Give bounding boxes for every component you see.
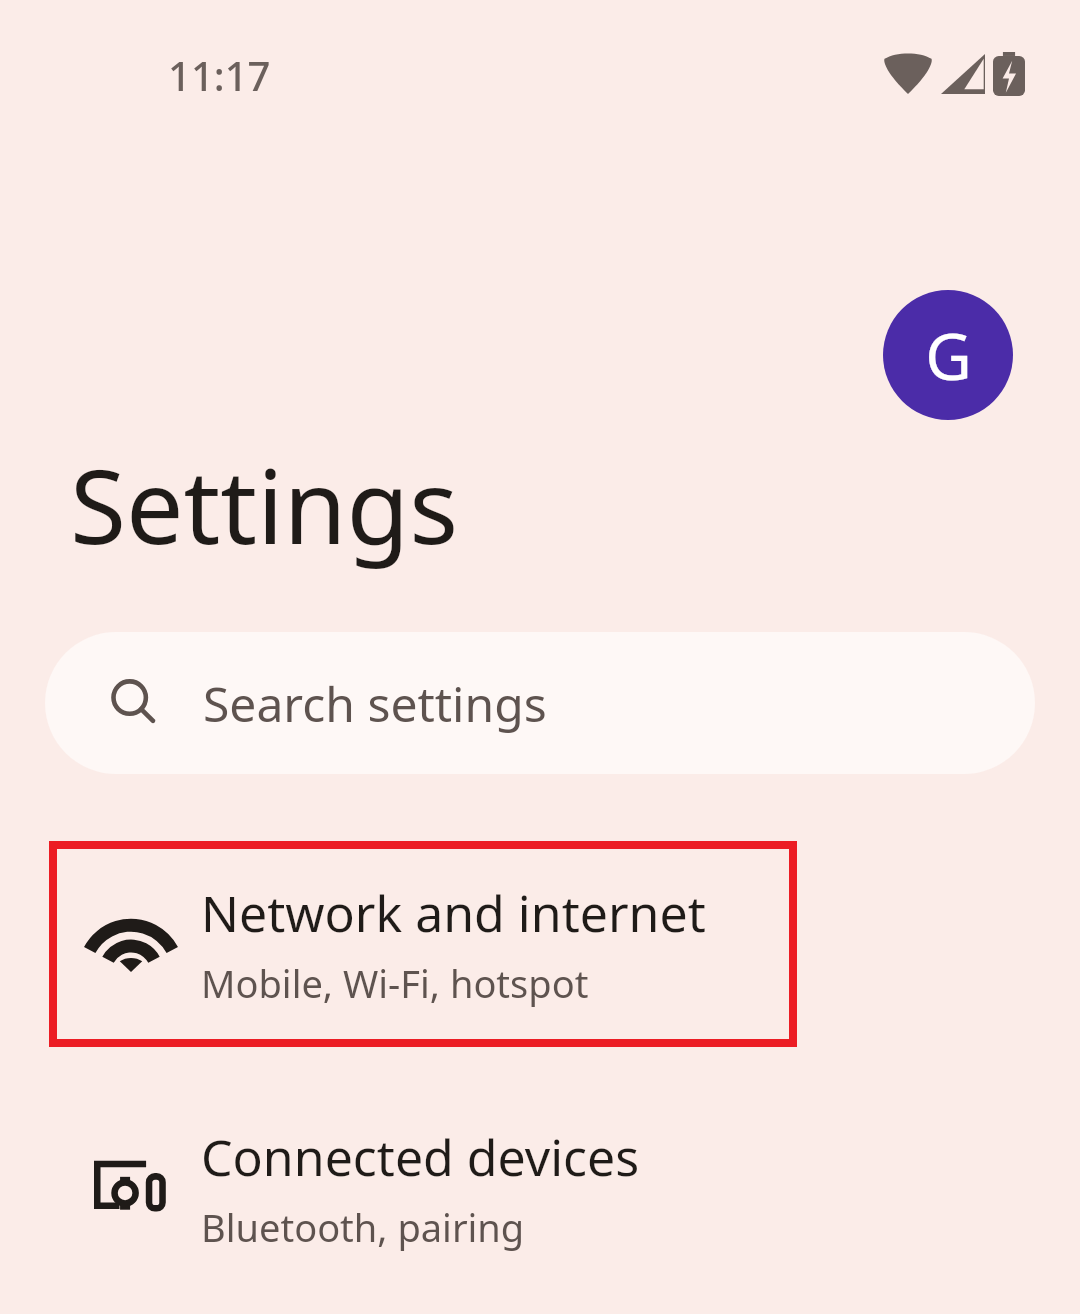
staticText: Search settings (203, 671, 547, 736)
staticText: G (925, 312, 972, 399)
staticText: Mobile, Wi-Fi, hotspot (201, 957, 589, 1009)
staticText: Network and internet (201, 879, 706, 947)
button[interactable]: Network and internet (49, 841, 797, 1047)
staticText: Bluetooth, pairing (201, 1201, 525, 1253)
staticText: Connected devices (201, 1123, 640, 1191)
button[interactable]: Account (883, 290, 1013, 420)
button[interactable]: Search settings (45, 632, 1035, 774)
button[interactable]: Connected devices (49, 1085, 797, 1291)
staticText: Settings (70, 435, 459, 574)
staticText: 11:17 (168, 48, 271, 102)
